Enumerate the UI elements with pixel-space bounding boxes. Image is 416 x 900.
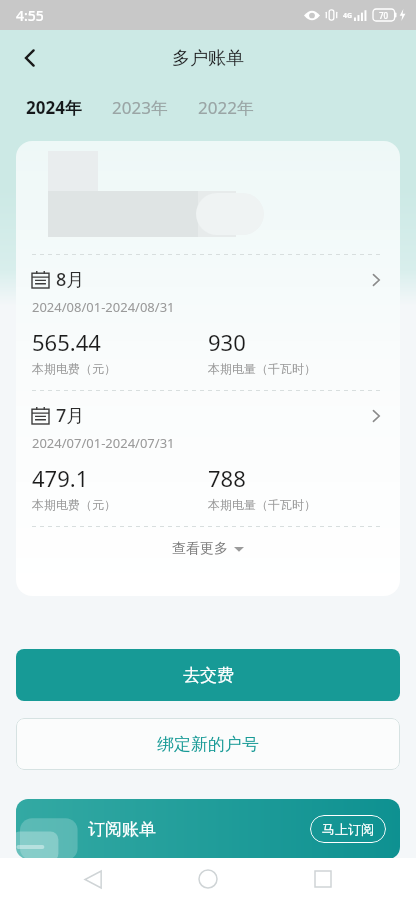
staticText: 订阅账单 bbox=[88, 819, 156, 840]
staticText: 4G bbox=[343, 11, 353, 21]
button[interactable]: Back bbox=[71, 858, 115, 900]
staticText: 930 bbox=[208, 327, 246, 357]
button[interactable]: 马上订阅 bbox=[310, 815, 386, 843]
button[interactable]: 7月 bbox=[16, 391, 400, 526]
other: Open bbox=[368, 272, 384, 288]
staticText: 2024/07/01-2024/07/31 bbox=[32, 434, 175, 452]
staticText: 7月 bbox=[56, 403, 85, 428]
button[interactable]: 8月 bbox=[16, 255, 400, 390]
staticText: 2024/08/01-2024/08/31 bbox=[32, 298, 175, 316]
staticText: 565.44 bbox=[32, 327, 101, 357]
staticText: 查看更多 bbox=[172, 540, 228, 558]
button[interactable]: 2023年 bbox=[110, 92, 170, 123]
staticText: 2024年 bbox=[26, 96, 82, 119]
staticText: 2022年 bbox=[198, 96, 254, 119]
staticText: 8月 bbox=[56, 267, 85, 292]
staticText: 去交费 bbox=[183, 665, 234, 686]
button[interactable]: 查看更多 bbox=[16, 527, 400, 571]
staticText: 2023年 bbox=[112, 96, 168, 119]
staticText: 马上订阅 bbox=[322, 821, 374, 837]
button[interactable]: 绑定新的户号 bbox=[16, 718, 400, 770]
button[interactable]: 订阅账单 bbox=[16, 799, 400, 859]
staticText: 多户账单 bbox=[172, 47, 244, 70]
staticText: 788 bbox=[208, 463, 246, 493]
staticText: 绑定新的户号 bbox=[157, 734, 259, 755]
button[interactable]: Home bbox=[186, 858, 230, 900]
staticText: 本期电费（元） bbox=[32, 497, 116, 512]
staticText: 70 bbox=[379, 10, 389, 21]
other: Open bbox=[368, 408, 384, 424]
button[interactable]: 2024年 bbox=[24, 92, 84, 123]
button[interactable]: 去交费 bbox=[16, 649, 400, 701]
button[interactable]: Back bbox=[8, 36, 52, 80]
button[interactable]: Recent apps bbox=[301, 858, 345, 900]
staticText: 4:55 bbox=[16, 6, 44, 25]
staticText: 本期电费（元） bbox=[32, 361, 116, 376]
staticText: 本期电量（千瓦时） bbox=[208, 497, 316, 512]
staticText: 本期电量（千瓦时） bbox=[208, 361, 316, 376]
button[interactable]: 2022年 bbox=[196, 92, 256, 123]
staticText: 479.1 bbox=[32, 463, 89, 493]
